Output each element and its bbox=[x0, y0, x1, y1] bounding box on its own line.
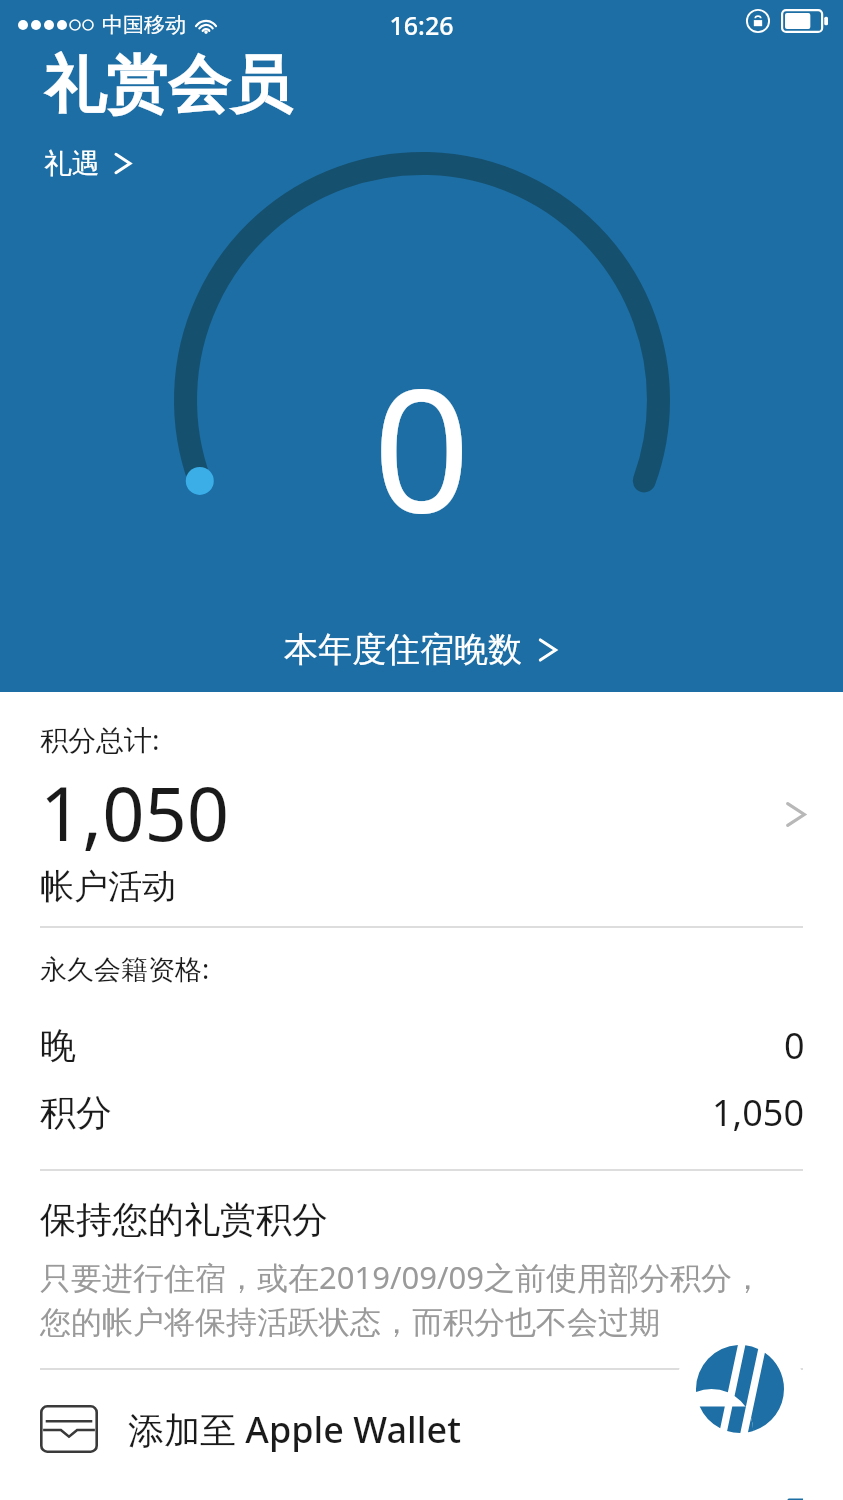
button[interactable]: Marriott Bonvoy assistant bbox=[676, 1325, 804, 1453]
staticText: 添加至 Apple Wallet bbox=[128, 1405, 461, 1454]
button[interactable]: 礼遇 bbox=[44, 142, 146, 185]
staticText: 0 bbox=[0, 330, 843, 562]
staticText: 积分总计: bbox=[40, 720, 160, 758]
staticText: 1,050 bbox=[712, 1088, 805, 1137]
staticText: 0 bbox=[784, 1021, 805, 1070]
staticText: 帐户活动 bbox=[40, 865, 176, 908]
staticText: 积分 bbox=[40, 1090, 712, 1135]
staticText: 礼遇 bbox=[44, 146, 100, 181]
staticText: 只要进行住宿，或在2019/09/09之前使用部分积分， 您的帐户将保持活跃状态… bbox=[40, 1256, 763, 1342]
button[interactable]: 积分总计: bbox=[0, 692, 843, 926]
staticText: 1,050 bbox=[40, 762, 230, 863]
button[interactable]: 添加至 Apple Wallet bbox=[0, 1370, 843, 1488]
button[interactable]: 本年度住宿晚数 bbox=[0, 628, 843, 671]
staticText: 晚 bbox=[40, 1023, 784, 1068]
button[interactable]: 晚 bbox=[0, 1015, 843, 1076]
staticText: 本年度住宿晚数 bbox=[284, 628, 522, 671]
staticText: 礼赏会员 bbox=[44, 46, 292, 124]
staticText: 保持您的礼赏积分 bbox=[40, 1197, 328, 1242]
staticText: 16:26 bbox=[0, 8, 843, 42]
staticText: 永久会籍资格: bbox=[40, 950, 210, 987]
staticText: 中国移动 bbox=[102, 12, 186, 38]
button[interactable]: 积分 bbox=[0, 1082, 843, 1143]
